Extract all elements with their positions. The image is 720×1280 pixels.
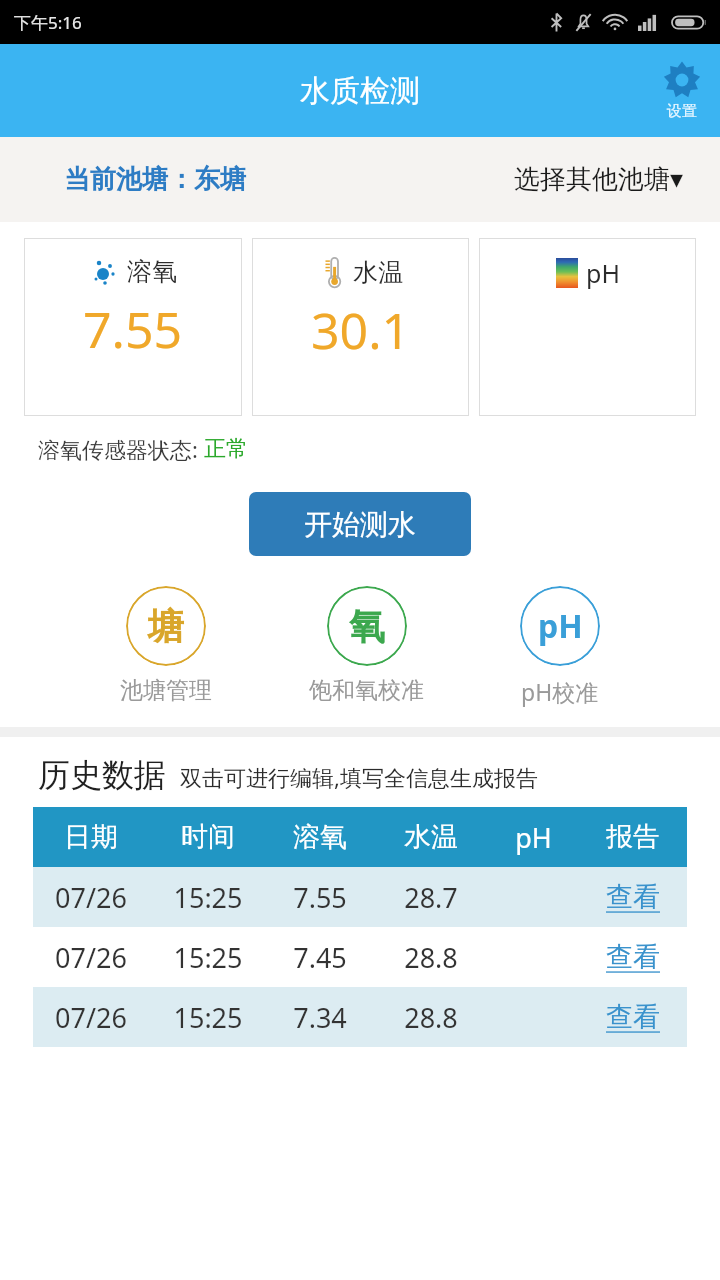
staticText: pH: [515, 819, 552, 856]
staticText: 查看: [606, 940, 660, 974]
staticText: 饱和氧校准: [309, 676, 424, 705]
staticText: 15:25: [173, 939, 243, 976]
staticText: 设置: [667, 102, 697, 121]
button[interactable]: 选择其他池塘▾: [510, 159, 688, 200]
staticText: 池塘管理: [120, 676, 212, 705]
staticText: 28.8: [404, 999, 458, 1036]
staticText: pH: [538, 604, 583, 648]
staticText: 查看: [606, 880, 660, 914]
staticText: 15:25: [173, 879, 243, 916]
staticText: 历史数据: [38, 755, 166, 795]
staticText: 日期: [64, 820, 118, 854]
button[interactable]: 水温: [252, 238, 469, 416]
staticText: 时间: [181, 820, 235, 854]
button[interactable]: 开始测水: [249, 492, 471, 556]
button[interactable]: 07/26: [33, 987, 687, 1047]
staticText: 7.55: [293, 879, 347, 916]
staticText: 水质检测: [300, 72, 420, 110]
staticText: 28.8: [404, 939, 458, 976]
staticText: pH校准: [521, 676, 599, 707]
staticText: 07/26: [55, 939, 127, 976]
staticText: 水温: [353, 257, 403, 288]
staticText: 开始测水: [304, 507, 416, 542]
staticText: 07/26: [55, 999, 127, 1036]
staticText: 溶氧: [293, 820, 347, 854]
staticText: 当前池塘：东塘: [64, 163, 246, 196]
staticText: pH: [586, 256, 620, 290]
staticText: 30.1: [311, 296, 411, 364]
staticText: 塘: [148, 604, 184, 649]
button[interactable]: 设置: [658, 58, 706, 123]
staticText: 7.34: [293, 999, 347, 1036]
staticText: 水温: [404, 820, 458, 854]
staticText: 07/26: [55, 879, 127, 916]
staticText: 报告: [606, 820, 660, 854]
staticText: 7.55: [83, 295, 183, 363]
button[interactable]: 07/26: [33, 867, 687, 927]
staticText: 溶氧: [127, 256, 177, 287]
button[interactable]: 07/26: [33, 927, 687, 987]
staticText: 溶氧传感器状态:: [38, 434, 204, 464]
staticText: 双击可进行编辑,填写全信息生成报告: [180, 762, 538, 792]
staticText: 28.7: [404, 879, 458, 916]
button[interactable]: 塘: [114, 586, 218, 705]
staticText: 正常: [204, 435, 248, 463]
staticText: 7.45: [293, 939, 347, 976]
button[interactable]: pH: [514, 586, 606, 707]
staticText: 选择其他池塘▾: [514, 163, 684, 196]
staticText: 氧: [349, 604, 385, 649]
button[interactable]: 溶氧: [24, 238, 242, 416]
button[interactable]: 氧: [303, 586, 430, 705]
staticText: 15:25: [173, 999, 243, 1036]
button[interactable]: pH: [479, 238, 696, 416]
staticText: 查看: [606, 1000, 660, 1034]
button[interactable]: 当前池塘：东塘: [60, 159, 250, 200]
staticText: 下午5:16: [14, 11, 82, 34]
